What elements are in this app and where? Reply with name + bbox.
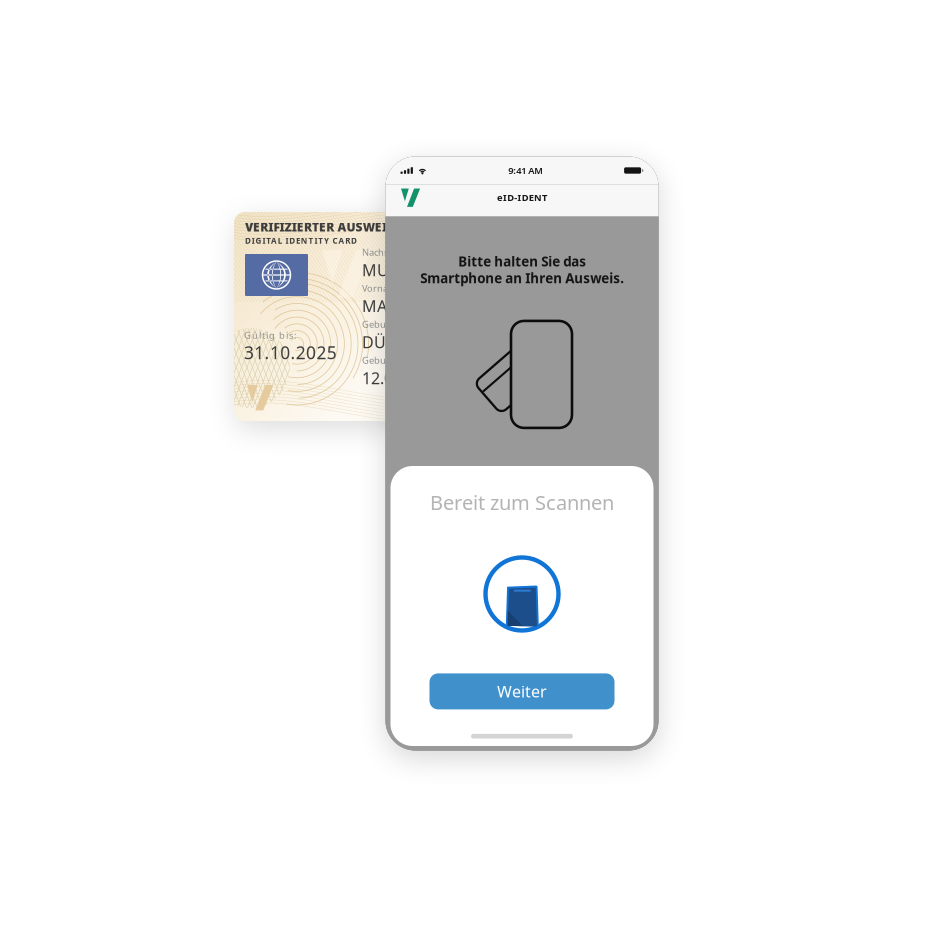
staticText: Weiter: [497, 681, 547, 702]
button[interactable]: Weiter: [429, 673, 614, 709]
button[interactable]: Verimi: [385, 184, 428, 216]
staticText: 9:41 AM: [508, 164, 543, 177]
staticText: Geburtsort: [362, 318, 410, 330]
staticText: MAX: [362, 295, 396, 317]
staticText: Gültig bis:: [244, 329, 297, 341]
staticText: MUSTERMANN: [362, 259, 475, 281]
staticText: DÜSSELDORF: [362, 331, 463, 353]
staticText: Geburtstag: [362, 354, 411, 366]
staticText: Vorname: [362, 282, 402, 294]
staticText: eID-IDENT: [497, 191, 547, 204]
staticText: DIGITAL IDENTITY CARD: [245, 235, 357, 246]
staticText: 31.10.2025: [244, 341, 337, 364]
staticText: Bitte halten Sie das Smartphone an Ihren…: [420, 252, 624, 287]
staticText: Bereit zum Scannen: [430, 489, 614, 516]
staticText: 12.08.1990: [362, 367, 442, 389]
staticText: VERIFIZIERTER AUSWEIS: [245, 219, 394, 235]
staticText: Nachname: [362, 246, 409, 258]
